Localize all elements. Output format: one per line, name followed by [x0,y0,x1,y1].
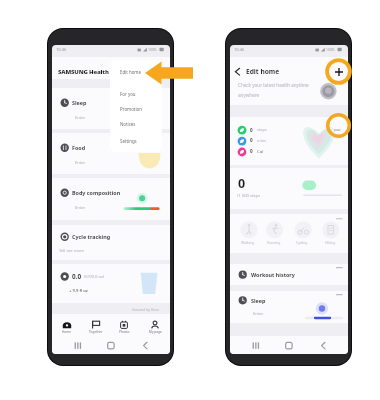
staticText: Home [62,330,72,334]
staticText: 0 [238,175,246,192]
staticText: Body composition [72,189,121,196]
staticText: Cycling [296,240,308,245]
staticText: Hiking [325,240,336,245]
staticText: 10:46 [56,47,67,52]
button[interactable]: Home [53,316,81,339]
staticText: Together [89,330,103,334]
staticText: + 9.9 fl oz [69,288,88,294]
staticText: 0 [250,148,253,154]
button[interactable]: Edit home [246,67,280,76]
staticText: anywhere [238,92,260,98]
staticText: Notices [120,121,136,127]
button[interactable]: Photos [110,316,138,339]
other: System navigation bar [230,336,348,354]
button[interactable]: SAMSUNG Health [58,68,109,76]
staticText: (67/0.0 oz) [84,274,105,280]
staticText: Cycle tracking [72,233,111,240]
button[interactable] [52,178,170,220]
staticText: Enter [75,115,86,121]
staticText: Promotion [120,106,142,112]
other: Tap Edit home [145,61,193,85]
button[interactable] [230,291,348,323]
button[interactable] [230,214,348,253]
button[interactable] [230,168,348,209]
button[interactable]: Notices [110,118,162,131]
other: System navigation bar [52,336,170,354]
button[interactable]: My page [141,316,169,339]
staticText: Enter [75,205,86,211]
staticText: 0 [250,137,253,143]
staticText: 100% [326,47,335,52]
button[interactable]: Promotion [110,103,162,116]
button[interactable]: Add item [331,64,347,80]
button[interactable] [52,88,170,129]
button[interactable] [230,264,348,285]
staticText: mins [257,138,266,143]
button[interactable] [52,264,170,303]
staticText: 10:46 [234,47,245,52]
staticText: Enter [75,160,86,166]
button[interactable] [230,117,348,165]
staticText: /1 000 steps [237,193,261,199]
button[interactable]: Settings [110,135,162,148]
button[interactable]: Edit home [110,66,162,79]
button[interactable] [52,133,170,174]
staticText: 0 [250,127,253,133]
staticText: Sleep [72,99,87,106]
staticText: Enter [253,311,264,317]
other: Tap the remove button [326,113,351,138]
staticText: Tell me more [59,248,84,254]
staticText: Secured by Knox [132,307,160,312]
staticText: Photos [119,330,130,334]
staticText: Workout history [251,271,295,278]
staticText: Edit home [120,69,141,75]
button[interactable]: Together [82,316,110,339]
button[interactable] [52,225,170,260]
button[interactable]: For you [110,88,162,101]
staticText: 0.0 [72,272,82,281]
staticText: Cal [257,149,264,155]
button[interactable]: Back [232,64,244,78]
staticText: My page [149,330,162,334]
staticText: Settings [120,138,137,144]
other: Tap the add button [324,57,353,86]
staticText: Sleep [251,297,266,304]
staticText: Running [267,240,281,245]
staticText: For you [120,91,136,97]
staticText: 100% [148,47,157,52]
staticText: Check your latest health anytime [238,82,309,88]
staticText: Food [72,144,86,151]
staticText: Walking [241,240,254,245]
staticText: steps [257,127,267,132]
